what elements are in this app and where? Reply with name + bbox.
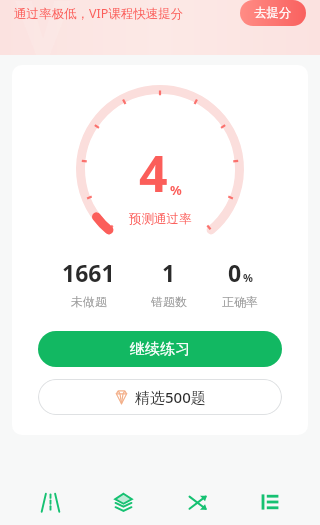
staticText: % [170, 181, 182, 199]
button[interactable]: 去提分 [240, 0, 306, 26]
staticText: 去提分 [254, 5, 292, 21]
staticText: 1661 [62, 257, 115, 288]
staticText: 预测通过率 [129, 211, 192, 227]
button[interactable]: List [247, 479, 293, 525]
staticText: 继续练习 [130, 340, 190, 359]
staticText: 错题数 [151, 294, 187, 309]
button[interactable]: 继续练习 [38, 331, 282, 367]
button[interactable]: 精选500题 [38, 379, 282, 415]
staticText: 精选500题 [135, 387, 206, 407]
button[interactable]: Road [27, 479, 73, 525]
staticText: 正确率 [222, 294, 258, 309]
staticText: 未做题 [71, 294, 107, 309]
button[interactable]: Courses [100, 479, 146, 525]
staticText: % [243, 270, 253, 285]
staticText: 0 [228, 257, 242, 288]
staticText: 1 [162, 257, 176, 288]
staticText: 4 [139, 139, 168, 207]
button[interactable]: Shuffle [174, 479, 220, 525]
staticText: 通过率极低，VIP课程快速提分 [14, 5, 184, 22]
